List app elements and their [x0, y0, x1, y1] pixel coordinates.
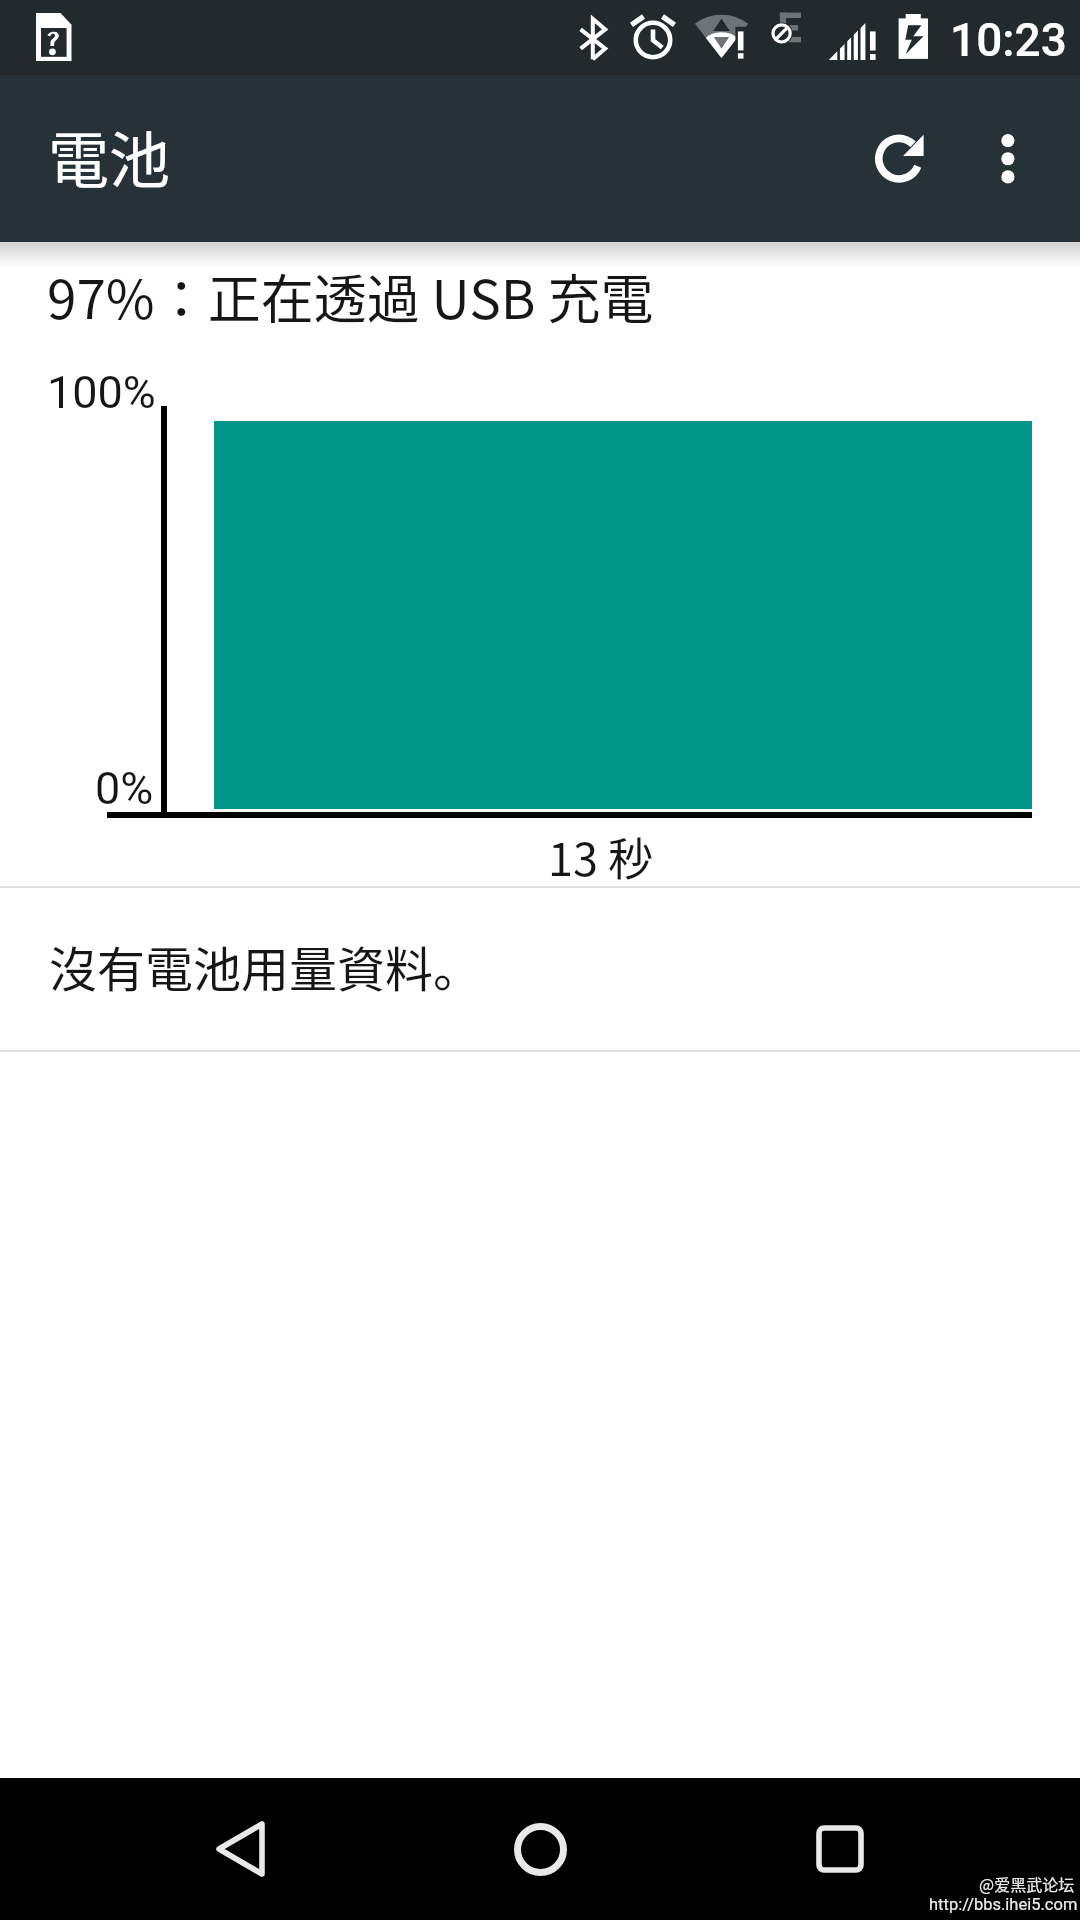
button[interactable]: Recent apps — [780, 1778, 900, 1920]
button[interactable]: More options — [966, 75, 1050, 242]
button[interactable]: Back — [180, 1778, 300, 1920]
staticText: 0% — [95, 762, 154, 815]
staticText: http://bbs.ihei5.com — [929, 1895, 1078, 1914]
button[interactable]: Refresh — [857, 117, 941, 201]
staticText: @爱黑武论坛 — [979, 1872, 1075, 1895]
staticText: 100% — [47, 366, 156, 419]
button[interactable]: 97%：正在透過 USB 充電 — [0, 242, 1080, 888]
button[interactable]: 沒有電池用量資料。 — [0, 888, 1080, 1050]
staticText: 13 秒 — [548, 824, 654, 889]
button[interactable]: Home — [480, 1778, 600, 1920]
staticText: 沒有電池用量資料。 — [49, 931, 482, 1001]
staticText: 97%：正在透過 USB 充電 — [47, 258, 654, 335]
staticText: 電池 — [48, 112, 171, 200]
staticText: 10:23 — [950, 13, 1067, 67]
